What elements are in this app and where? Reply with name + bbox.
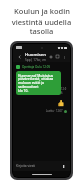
button[interactable]: Kirjoita viesti [16,164,61,168]
staticText: Kirjoita viesti [16,164,36,168]
button[interactable]: Send [61,163,67,169]
staticText: Huomisen koululii… [25,52,47,58]
staticText: Opettaja Oulu 12:05 [22,65,51,69]
button[interactable]: Info [54,53,61,60]
staticText: viestintä uudella tasolla [0,17,83,36]
staticText: 12:06 [61,87,67,95]
button[interactable]: Thumbs up reaction [56,98,65,107]
button[interactable]: Add [47,53,54,60]
button[interactable]: More options [61,54,67,60]
staticText: Koulun ja kodin [14,6,70,16]
button[interactable]: Huomenna! Muistutus päiväretkestä, ottak… [16,71,61,95]
staticText: Huomenna! Muistutus päiväretkestä, ottak… [18,73,59,93]
button[interactable]: Huomisen koululii… [25,52,47,62]
button[interactable]: Back [16,53,23,60]
staticText: 5ppl, 17ko, en [25,58,46,62]
staticText: Luettu · 12:07 [46,109,63,113]
